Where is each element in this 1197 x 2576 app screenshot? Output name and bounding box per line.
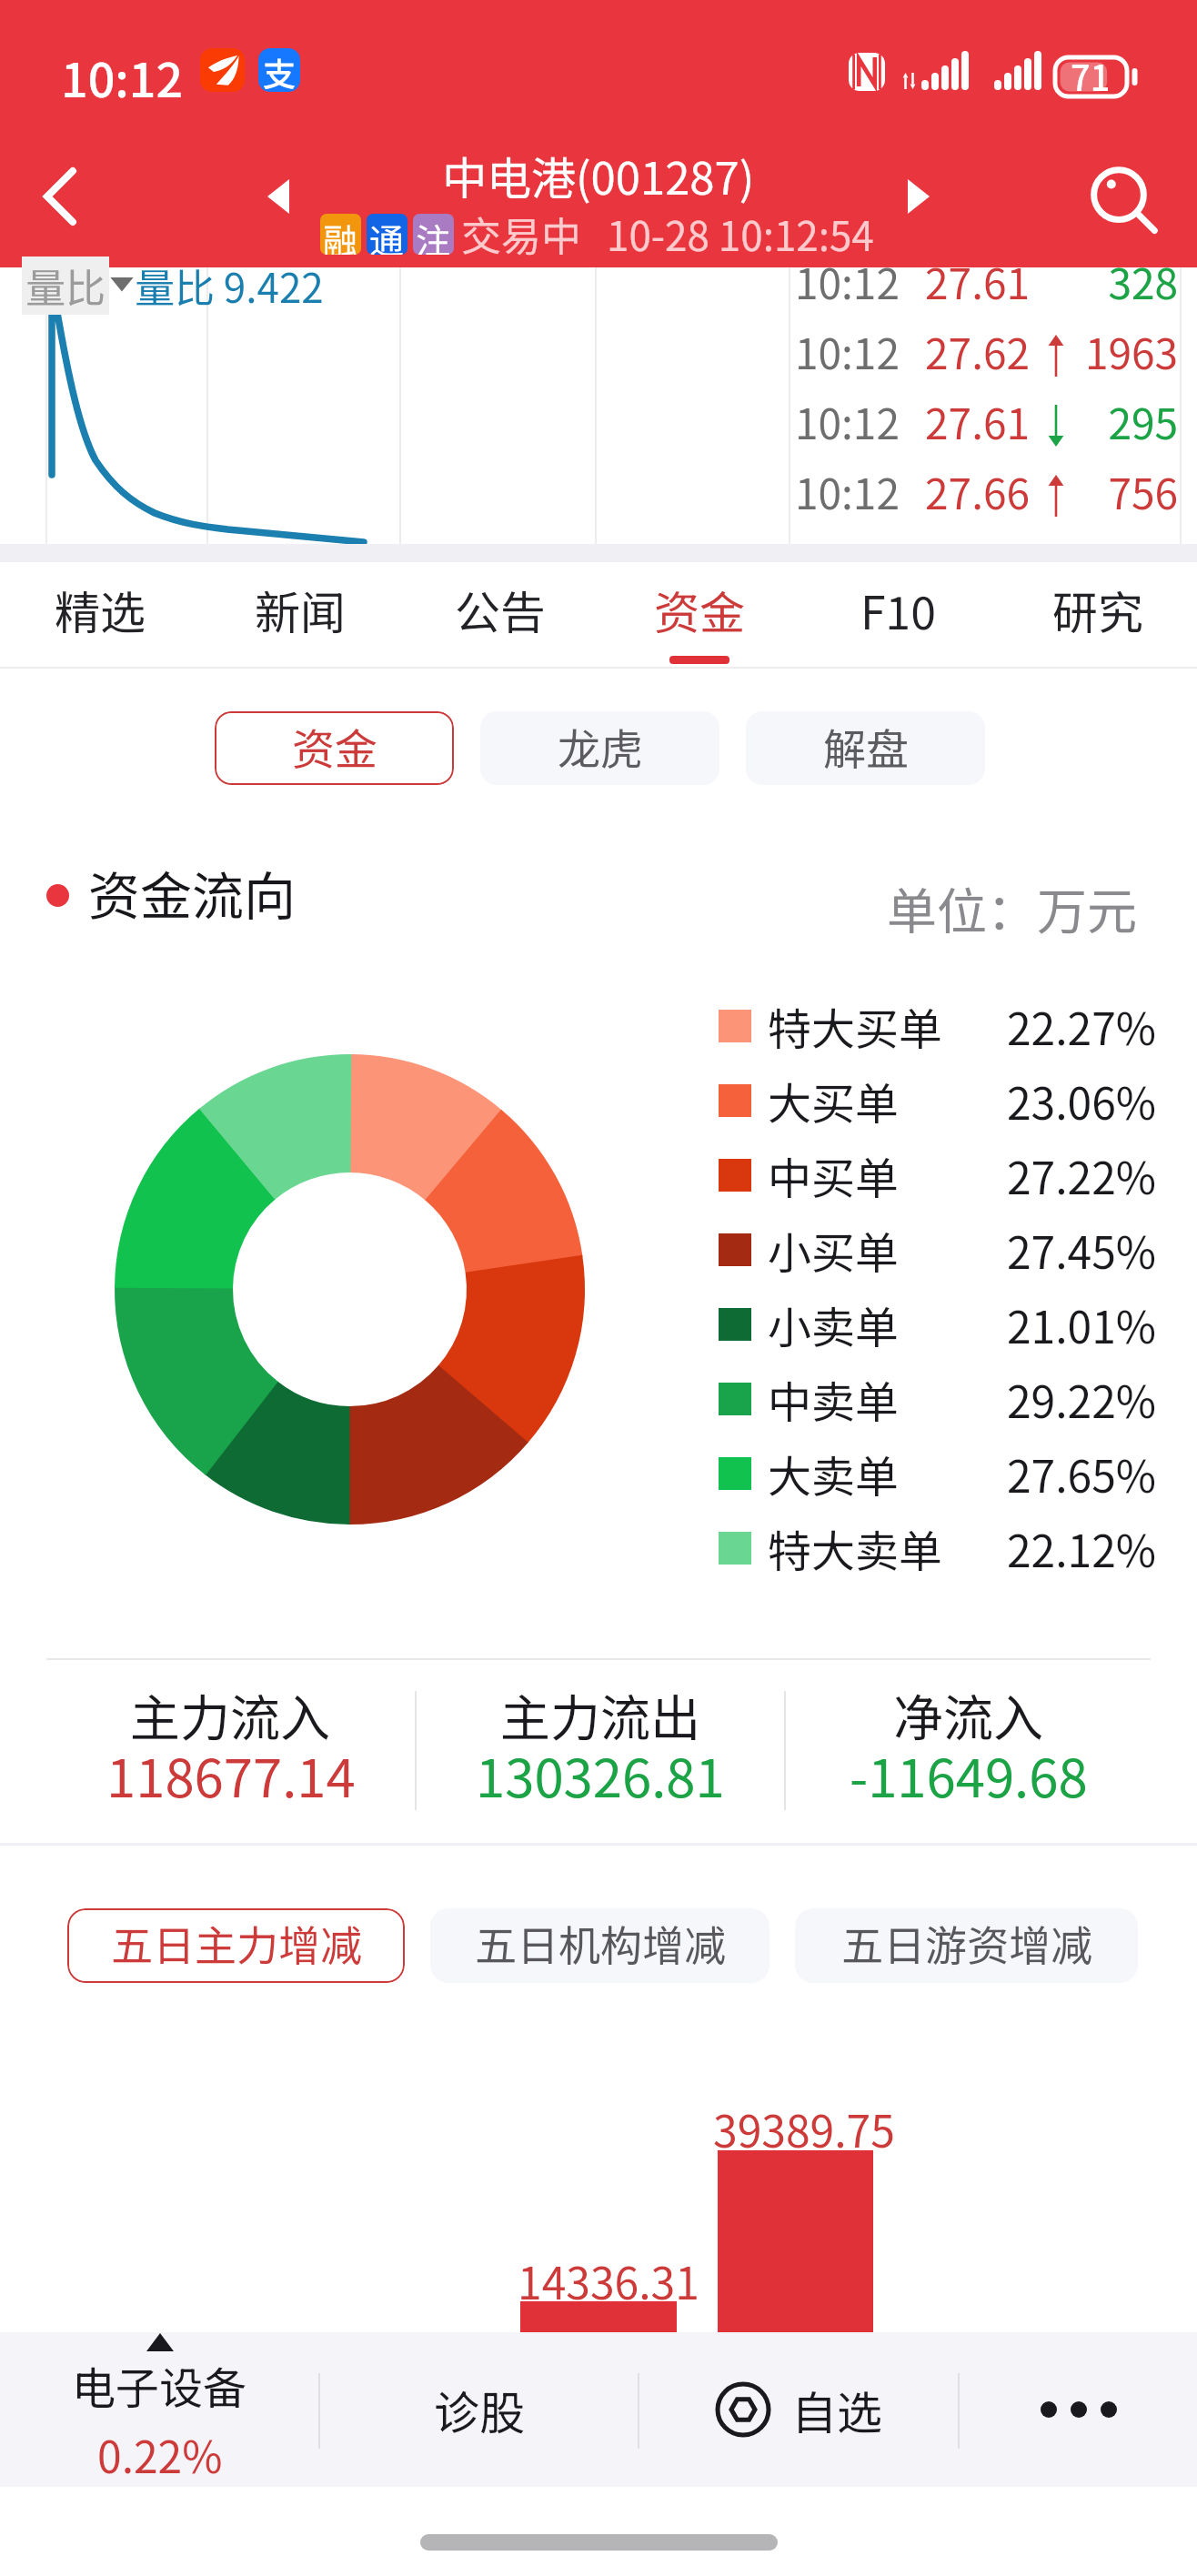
staticText: 27.62 [844, 321, 1030, 382]
staticText: 量比 9.422 [135, 257, 324, 315]
staticText: 精选 [55, 577, 146, 642]
staticText: 通 [369, 214, 405, 255]
staticText: 新闻 [255, 577, 346, 642]
button[interactable]: Search [1062, 140, 1175, 253]
staticText: 130326.81 [476, 1736, 725, 1813]
staticText: 量比 [25, 257, 106, 315]
button[interactable]: 五日游资增减 [795, 1908, 1138, 1983]
button[interactable]: 中卖单 [719, 1362, 1156, 1436]
staticText: 特大买单 [768, 994, 943, 1058]
staticText: 0.22% [97, 2422, 223, 2486]
button[interactable]: 净流入 [786, 1675, 1151, 1826]
staticText: 295 [953, 391, 1178, 452]
staticText: -11649.68 [850, 1736, 1088, 1813]
button[interactable]: 资金 [599, 562, 799, 668]
staticText: 756 [953, 461, 1178, 522]
staticText: 自选 [791, 2377, 882, 2442]
staticText: 电子设备 [72, 2353, 247, 2417]
staticText: 27.65% [1006, 1442, 1156, 1505]
button[interactable]: 诊股 [320, 2332, 638, 2487]
staticText: 22.12% [1006, 1516, 1156, 1580]
button[interactable]: 五日机构增减 [430, 1908, 769, 1983]
staticText: 单位：万元 [887, 871, 1138, 944]
button[interactable]: 小卖单 [719, 1287, 1156, 1362]
staticText: 27.66 [844, 461, 1030, 522]
staticText: 10:12 [795, 461, 900, 522]
staticText: 21.01% [1006, 1293, 1156, 1356]
staticText: 特大卖单 [768, 1516, 943, 1580]
staticText: F10 [860, 577, 937, 642]
button[interactable]: 资金 [215, 711, 454, 785]
staticText: 10:12 [795, 321, 900, 382]
staticText: 10:12 [61, 43, 184, 111]
button[interactable]: 电子设备 [0, 2332, 318, 2487]
staticText: 研究 [1052, 577, 1143, 642]
staticText: 中电港(001287) [442, 143, 755, 207]
button[interactable]: 主力流入 [46, 1675, 415, 1826]
staticText: 支 [263, 48, 297, 92]
button[interactable]: 龙虎 [480, 711, 719, 785]
staticText: 中卖单 [768, 1367, 900, 1431]
button[interactable]: 研究 [998, 562, 1197, 668]
button[interactable]: 小买单 [719, 1213, 1156, 1287]
staticText: 五日机构增减 [475, 1913, 726, 1974]
staticText: 29.22% [1006, 1367, 1156, 1431]
staticText: 五日主力增减 [111, 1913, 362, 1974]
staticText: 资金 [654, 577, 745, 642]
staticText: 注 [416, 214, 451, 255]
staticText: 大卖单 [768, 1442, 900, 1505]
button[interactable]: 特大买单 [719, 989, 1156, 1063]
button[interactable]: Back [5, 142, 115, 251]
button[interactable]: More [960, 2332, 1197, 2487]
button[interactable]: 五日主力增减 [67, 1908, 405, 1983]
staticText: 27.61 [844, 251, 1030, 312]
button[interactable]: 大卖单 [719, 1436, 1156, 1511]
staticText: 14336.31 [518, 2249, 699, 2312]
staticText: 主力流出 [500, 1678, 701, 1751]
staticText: 诊股 [434, 2377, 525, 2442]
staticText: 大买单 [768, 1069, 900, 1132]
staticText: 五日游资增减 [841, 1913, 1092, 1974]
staticText: 39389.75 [713, 2097, 895, 2160]
staticText: 净流入 [893, 1678, 1044, 1751]
staticText: 328 [953, 251, 1178, 312]
staticText: 主力流入 [130, 1678, 331, 1751]
staticText: 龙虎 [558, 715, 643, 777]
staticText: 小卖单 [768, 1293, 900, 1356]
staticText: 资金流向 [88, 855, 296, 931]
button[interactable]: 特大卖单 [719, 1511, 1156, 1585]
button[interactable]: Next stock [882, 160, 955, 233]
staticText: 10:12 [795, 391, 900, 452]
staticText: 融 [323, 214, 358, 255]
staticText: 小买单 [768, 1218, 900, 1282]
staticText: 10:12 [795, 251, 900, 312]
staticText: 118677.14 [106, 1736, 356, 1813]
button[interactable]: 自选 [639, 2332, 958, 2487]
staticText: 71 [1071, 51, 1111, 101]
staticText: 27.61 [844, 391, 1030, 452]
button[interactable]: 大买单 [719, 1063, 1156, 1138]
button[interactable]: Previous stock [242, 160, 315, 233]
button[interactable]: F10 [799, 562, 998, 668]
button[interactable]: 精选 [0, 562, 200, 668]
button[interactable]: 中买单 [719, 1138, 1156, 1213]
staticText: 10-28 10:12:54 [607, 205, 874, 263]
staticText: 解盘 [823, 715, 909, 777]
button[interactable]: 公告 [400, 562, 599, 668]
button[interactable]: 解盘 [746, 711, 985, 785]
staticText: 23.06% [1006, 1069, 1156, 1132]
button[interactable]: 主力流出 [417, 1675, 784, 1826]
button[interactable]: 新闻 [200, 562, 400, 668]
staticText: 公告 [455, 577, 546, 642]
staticText: 资金 [292, 715, 377, 777]
staticText: 22.27% [1006, 994, 1156, 1058]
staticText: 中买单 [768, 1143, 900, 1207]
staticText: 1963 [953, 321, 1178, 382]
staticText: 交易中 [461, 205, 581, 263]
staticText: 27.45% [1006, 1218, 1156, 1282]
staticText: 27.22% [1006, 1143, 1156, 1207]
